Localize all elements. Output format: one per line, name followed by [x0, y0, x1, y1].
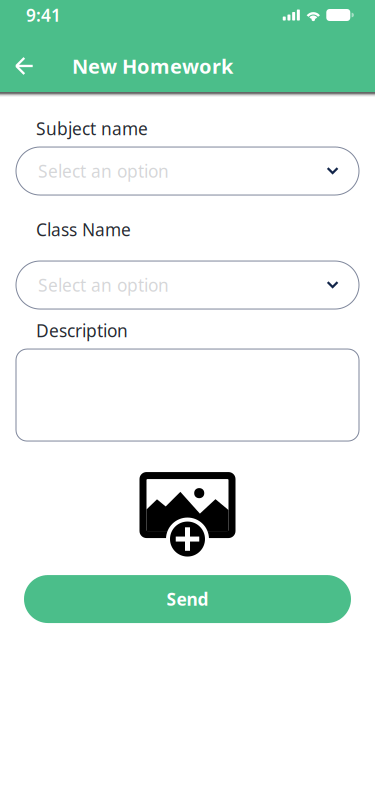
staticText: New Homework	[72, 53, 233, 79]
staticText: Select an option	[38, 159, 169, 182]
button[interactable]: Back	[0, 42, 48, 90]
staticText: Class Name	[36, 218, 131, 241]
button[interactable]: Add photo	[139, 461, 235, 549]
staticText: Subject name	[36, 117, 148, 140]
button[interactable]: Send	[24, 575, 351, 623]
button[interactable]: Select an option	[16, 147, 359, 195]
button[interactable]: Select an option	[16, 261, 359, 309]
staticText: Description	[36, 319, 128, 342]
staticText: Send	[166, 587, 208, 610]
staticText: 9:41	[26, 3, 61, 26]
staticText: Select an option	[38, 273, 169, 296]
